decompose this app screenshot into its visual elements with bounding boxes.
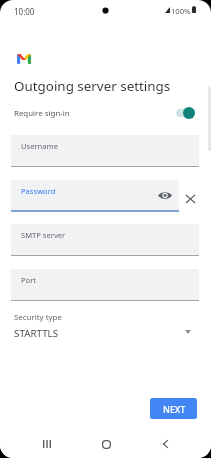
- staticText: Require sign-in: [14, 108, 70, 119]
- staticText: Username: [21, 141, 58, 151]
- button[interactable]: Username: [11, 135, 199, 167]
- button[interactable]: Require sign-in: [0, 102, 211, 124]
- staticText: Outgoing server settings: [14, 77, 171, 95]
- staticText: NEXT: [163, 403, 186, 415]
- button[interactable]: Back: [145, 430, 185, 458]
- staticText: SMTP server: [21, 230, 66, 240]
- button[interactable]: Require sign-in toggle: [176, 107, 195, 119]
- button[interactable]: Show password: [156, 186, 174, 205]
- button[interactable]: Clear password: [182, 191, 198, 207]
- staticText: STARTTLS: [14, 327, 59, 340]
- button[interactable]: SMTP server: [11, 224, 199, 256]
- button[interactable]: Security type STARTTLS: [0, 308, 211, 346]
- button[interactable]: NEXT: [150, 398, 197, 419]
- staticText: Port: [21, 275, 37, 285]
- button[interactable]: Port: [11, 269, 199, 301]
- staticText: Password: [21, 186, 56, 196]
- button[interactable]: Home: [86, 430, 126, 458]
- staticText: 10:00: [14, 6, 35, 17]
- button[interactable]: Password: [11, 180, 179, 212]
- button[interactable]: Recents: [27, 430, 67, 458]
- staticText: Security type: [14, 312, 62, 323]
- staticText: 100%: [171, 6, 191, 16]
